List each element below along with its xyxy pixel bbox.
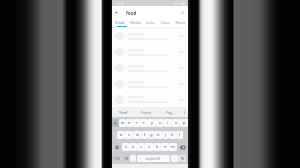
staticText: p [183,120,186,126]
staticText: d [136,132,139,138]
button[interactable]: ?123 [112,153,122,164]
staticText: l [179,132,181,138]
button[interactable]: t [140,119,148,127]
button[interactable]: Shift [112,141,122,153]
button[interactable]: Clear search [178,6,187,19]
button[interactable]: j [162,131,169,139]
staticText: food [126,10,137,16]
staticText: n [164,144,167,150]
button[interactable]: x [129,143,137,151]
staticText: k [171,132,174,138]
button[interactable]: f [141,131,148,139]
staticText: s [128,132,131,138]
staticText: c [140,144,143,150]
staticText: x [132,144,135,150]
button[interactable]: Back [112,6,121,19]
staticText: , [133,156,134,161]
staticText: "food" [118,110,129,115]
button[interactable]: q [112,119,119,127]
staticText: w [121,120,125,126]
button[interactable]: y [148,119,156,127]
button[interactable]: v [145,143,153,151]
button[interactable]: m [169,143,177,151]
staticText: r [136,120,138,126]
staticText: f [144,132,146,138]
button[interactable]: c [137,143,145,151]
button[interactable]: w [119,119,126,127]
staticText: Docs [161,20,170,25]
staticText: z [125,144,127,150]
button[interactable]: n [161,143,169,151]
staticText: m [171,144,175,150]
button[interactable]: h [155,131,162,139]
staticText: i [167,120,169,126]
staticText: Foods [141,110,152,115]
button[interactable]: Docs [158,19,173,26]
button[interactable]: Emoji [122,153,130,164]
button[interactable]: u [156,119,164,127]
staticText: e [128,120,131,126]
staticText: j [165,132,167,138]
button[interactable] [112,92,188,107]
staticText: u [159,120,162,126]
button[interactable]: a [117,131,125,139]
button[interactable]: d [133,131,141,139]
staticText: b [156,144,159,150]
button[interactable]: s [125,131,133,139]
button[interactable]: l [176,131,183,139]
button[interactable]: k [169,131,176,139]
button[interactable]: Music [173,19,188,26]
staticText: o [175,120,178,126]
button[interactable]: Chats [112,19,128,26]
staticText: g [150,132,153,138]
button[interactable]: g [148,131,155,139]
staticText: Chats [115,20,125,25]
button[interactable]: . [171,155,178,162]
staticText: a [120,132,123,138]
button[interactable]: i [164,119,172,127]
button[interactable]: Foods [135,107,158,117]
staticText: ?123 [114,157,121,161]
button[interactable]: "food" [112,107,135,117]
staticText: y [151,120,154,126]
button[interactable]: Links [143,19,158,26]
button[interactable]: o [172,119,180,127]
staticText: q [114,120,117,126]
staticText: . [174,156,175,161]
button[interactable] [112,28,188,44]
button[interactable]: e [126,119,133,127]
staticText: h [157,132,160,138]
button[interactable]: , [130,155,136,162]
staticText: Fog [166,110,173,115]
staticText: Music [175,20,186,25]
button[interactable]: More suggestions [181,107,188,117]
button[interactable]: r [133,119,140,127]
button[interactable]: z [122,143,129,151]
button[interactable]: b [153,143,161,151]
staticText: Links [146,20,155,25]
button[interactable]: Fog [158,107,181,117]
button[interactable]: p [180,119,188,127]
staticText: t [143,120,145,126]
staticText: English (US) [146,157,161,161]
button[interactable]: Media [128,19,143,26]
button[interactable]: English (US) [137,155,170,162]
button[interactable]: Backspace [177,141,188,153]
button[interactable] [112,44,188,60]
button[interactable] [112,60,188,76]
staticText: Media [130,20,141,25]
staticText: v [148,144,151,150]
button[interactable]: Search [178,155,186,162]
button[interactable] [112,76,188,92]
